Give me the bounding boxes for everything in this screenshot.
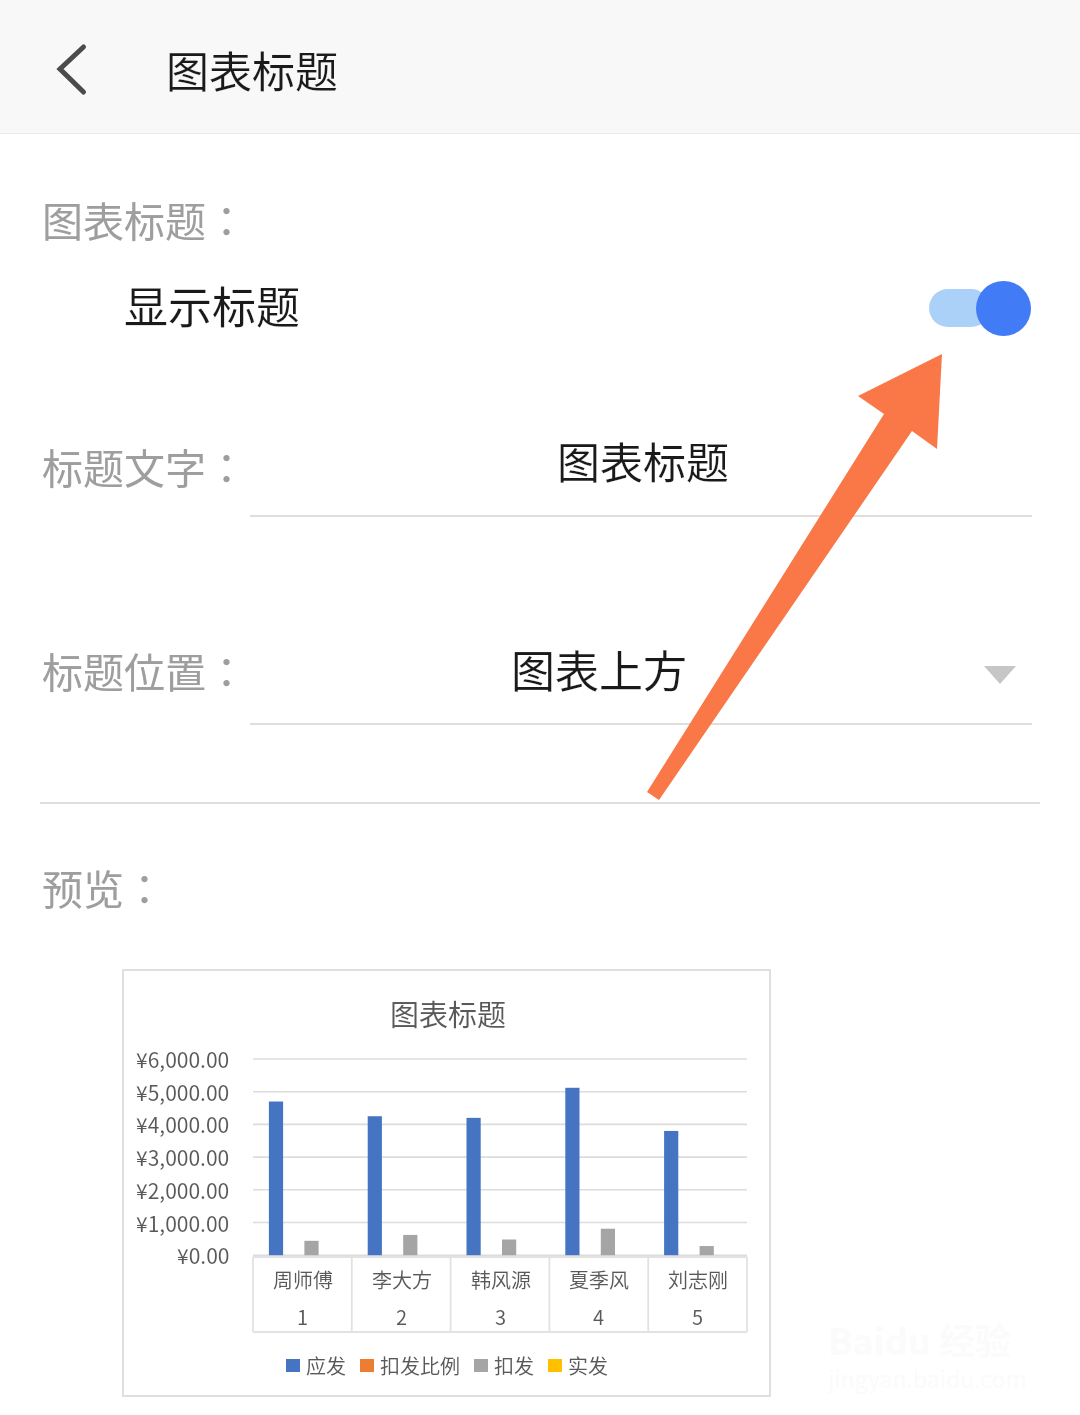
button[interactable]: 显示标题	[40, 262, 1040, 350]
button[interactable]: 标题位置：	[0, 632, 1080, 722]
staticText: 显示标题	[124, 273, 300, 337]
staticText: 标题文字：	[42, 436, 247, 495]
staticText: 扣发	[494, 1351, 534, 1379]
staticText: 李大方	[372, 1265, 432, 1294]
staticText: 1	[297, 1302, 309, 1331]
staticText: 图表标题	[557, 429, 729, 491]
button[interactable]: 标题文字：	[0, 430, 1080, 518]
staticText: ¥3,000.00	[136, 1142, 230, 1172]
button[interactable]: Back	[26, 22, 116, 112]
staticText: 4	[593, 1302, 605, 1331]
button[interactable]: Toggle show title	[919, 275, 1031, 341]
staticText: 2	[396, 1302, 408, 1331]
staticText: ¥5,000.00	[136, 1077, 230, 1107]
staticText: 应发	[306, 1351, 346, 1379]
staticText: 5	[692, 1302, 704, 1331]
staticText: 图表标题	[166, 38, 338, 100]
staticText: 实发	[568, 1351, 608, 1379]
staticText: 标题位置：	[42, 640, 247, 699]
staticText: 图表上方	[511, 637, 687, 701]
staticText: ¥1,000.00	[136, 1208, 230, 1238]
staticText: 周师傅	[273, 1265, 333, 1294]
staticText: 预览：	[42, 857, 165, 916]
button[interactable]: Open title position dropdown	[960, 646, 1040, 702]
staticText: ¥0.00	[177, 1240, 230, 1270]
staticText: ¥6,000.00	[136, 1044, 230, 1074]
staticText: 图表标题	[390, 992, 507, 1034]
staticText: 图表标题：	[42, 189, 247, 248]
staticText: 夏季风	[569, 1265, 629, 1294]
staticText: ¥2,000.00	[136, 1175, 230, 1205]
staticText: ¥4,000.00	[136, 1109, 230, 1139]
staticText: 刘志刚	[668, 1265, 728, 1294]
staticText: 扣发比例	[380, 1351, 460, 1379]
staticText: 3	[495, 1302, 507, 1331]
staticText: 韩风源	[471, 1265, 531, 1294]
